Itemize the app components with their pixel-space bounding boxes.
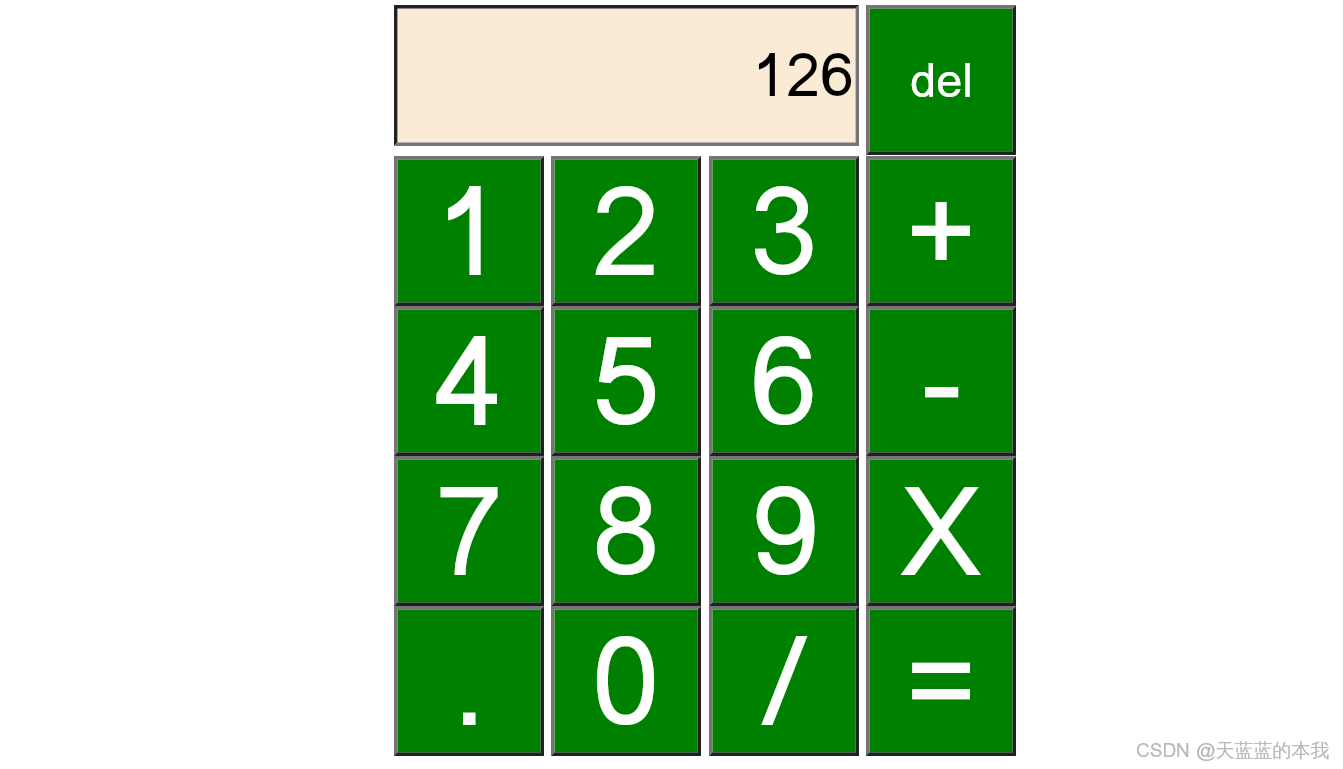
staticText: del (910, 43, 973, 118)
button[interactable]: Result display (394, 5, 859, 146)
staticText: 5 (592, 284, 660, 478)
staticText: . (452, 584, 486, 769)
button[interactable]: Divide (709, 606, 859, 756)
staticText: CSDN @天蓝蓝的本我 (1136, 735, 1330, 765)
staticText: 1 (435, 134, 503, 328)
staticText: / (766, 584, 802, 769)
staticText: 4 (435, 284, 503, 478)
staticText: = (905, 584, 977, 769)
staticText: 7 (435, 434, 503, 628)
button[interactable]: 4 (394, 306, 544, 456)
button[interactable]: 3 (709, 156, 859, 306)
button[interactable]: 8 (551, 456, 701, 606)
button[interactable]: 0 (551, 606, 701, 756)
staticText: 9 (750, 434, 818, 628)
button[interactable]: Delete (866, 5, 1016, 155)
button[interactable]: Decimal point (394, 606, 544, 756)
staticText: 3 (750, 134, 818, 328)
staticText: - (921, 284, 962, 478)
button[interactable]: 6 (709, 306, 859, 456)
button[interactable]: Minus (866, 306, 1016, 456)
staticText: 126 (752, 26, 854, 123)
staticText: 6 (750, 284, 818, 478)
staticText: 2 (592, 134, 660, 328)
staticText: 8 (592, 434, 660, 628)
button[interactable]: Multiply (866, 456, 1016, 606)
button[interactable]: 1 (394, 156, 544, 306)
staticText: + (905, 134, 977, 328)
staticText: 0 (592, 584, 660, 769)
staticText: X (900, 434, 982, 628)
button[interactable]: 9 (709, 456, 859, 606)
button[interactable]: Plus (866, 156, 1016, 306)
button[interactable]: Equals (866, 606, 1016, 756)
button[interactable]: 2 (551, 156, 701, 306)
button[interactable]: 7 (394, 456, 544, 606)
button[interactable]: 5 (551, 306, 701, 456)
